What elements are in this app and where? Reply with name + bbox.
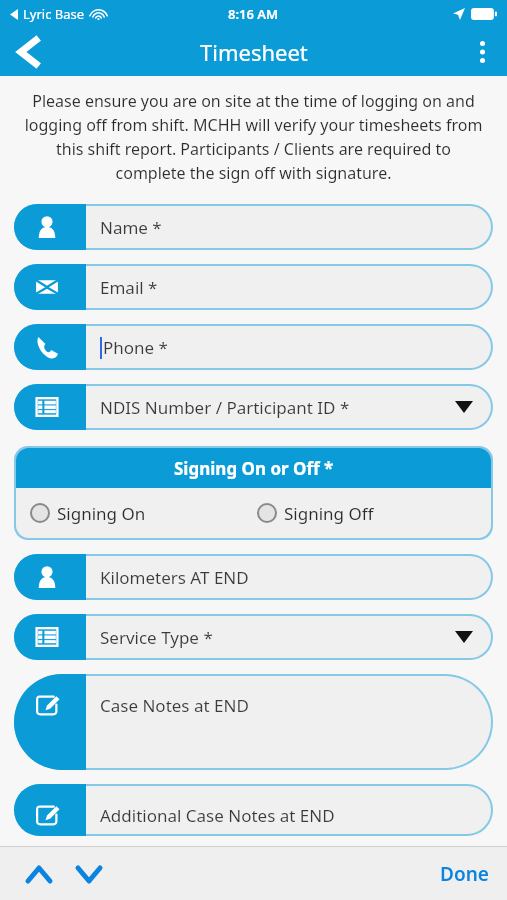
button[interactable]: Additional Case Notes at END [14, 784, 493, 836]
button[interactable]: Kilometers AT END [14, 554, 493, 600]
staticText: Additional Case Notes at END [100, 804, 335, 827]
staticText: Kilometers AT END [100, 566, 249, 589]
staticText: Signing On [57, 502, 146, 525]
button[interactable]: More options [457, 28, 507, 76]
button[interactable]: Signing On [30, 488, 253, 538]
button[interactable]: Service Type * [14, 614, 493, 660]
staticText: Phone * [103, 336, 168, 359]
staticText: Done [440, 861, 489, 887]
staticText: Timesheet [200, 37, 308, 67]
button[interactable]: Email * [14, 264, 493, 310]
staticText: Signing Off [284, 502, 374, 525]
staticText: Case Notes at END [100, 694, 249, 717]
button[interactable]: Previous field [14, 852, 64, 896]
staticText: Lyric Base [23, 5, 85, 23]
staticText: Name * [100, 216, 162, 239]
staticText: Service Type * [100, 626, 213, 649]
button[interactable]: Done [440, 861, 489, 887]
button[interactable]: Next field [64, 852, 114, 896]
staticText: NDIS Number / Participant ID * [100, 396, 350, 419]
button[interactable]: NDIS Number / Participant ID * [14, 384, 493, 430]
staticText: 8:16 AM [228, 5, 279, 23]
button[interactable]: Signing Off [257, 488, 491, 538]
button[interactable]: Name * [14, 204, 493, 250]
button[interactable]: Phone * [14, 324, 493, 370]
staticText: Email * [100, 276, 158, 299]
staticText: Please ensure you are on site at the tim… [20, 90, 487, 184]
button[interactable]: Case Notes at END [14, 674, 493, 770]
staticText: Signing On or Off * [174, 457, 334, 480]
button[interactable]: Back [0, 28, 56, 76]
